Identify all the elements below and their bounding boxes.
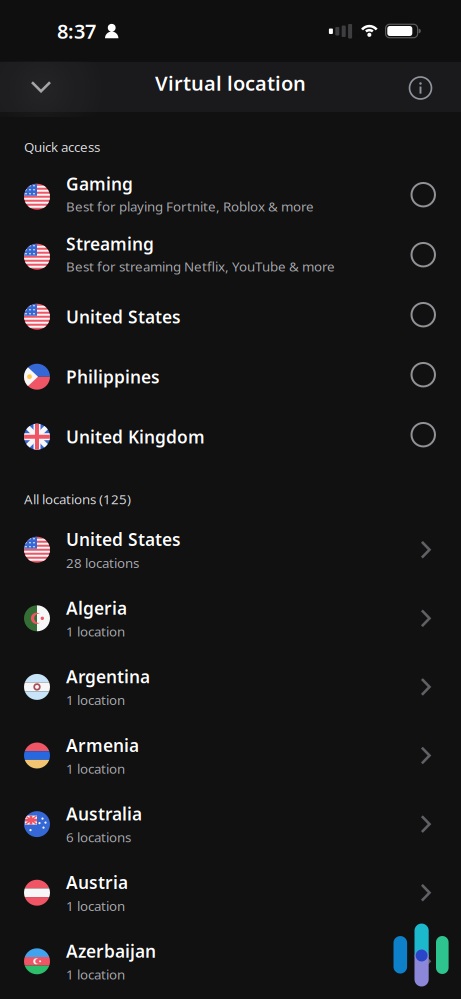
staticText: Armenia	[66, 734, 139, 757]
staticText: Best for playing Fortnite, Roblox & more	[66, 197, 314, 215]
button[interactable]: Australia	[0, 790, 461, 858]
staticText: 1 location	[66, 691, 125, 709]
staticText: United States	[66, 528, 181, 551]
button[interactable]: Info	[399, 67, 441, 109]
staticText: Argentina	[66, 665, 150, 688]
button[interactable]: Azerbaijan	[0, 927, 461, 996]
button[interactable]: Argentina	[0, 653, 461, 721]
button[interactable]: United Kingdom	[0, 407, 461, 467]
staticText: Australia	[66, 802, 142, 825]
button[interactable]: Austria	[0, 858, 461, 927]
button[interactable]: United States	[0, 515, 461, 584]
staticText: Austria	[66, 871, 128, 894]
button[interactable]: Armenia	[0, 721, 461, 790]
button[interactable]: United States	[0, 287, 461, 347]
staticText: 8:37	[57, 18, 96, 44]
button[interactable]: Algeria	[0, 584, 461, 653]
staticText: 1 location	[66, 897, 125, 915]
staticText: Philippines	[66, 365, 160, 388]
staticText: Algeria	[66, 596, 127, 619]
staticText: 6 locations	[66, 828, 131, 846]
button[interactable]: Dismiss	[16, 67, 65, 107]
staticText: Best for streaming Netflix, YouTube & mo…	[66, 257, 335, 275]
button[interactable]: Philippines	[0, 347, 461, 407]
staticText: 28 locations	[66, 554, 139, 572]
staticText: 1 location	[66, 760, 125, 777]
staticText: Gaming	[66, 172, 133, 195]
staticText: All locations (125)	[24, 490, 131, 508]
staticText: Virtual location	[155, 70, 306, 96]
staticText: Streaming	[66, 232, 154, 255]
button[interactable]: Gaming	[0, 167, 461, 227]
staticText: United Kingdom	[66, 425, 205, 448]
staticText: Azerbaijan	[66, 939, 156, 962]
staticText: 1 location	[66, 622, 125, 640]
staticText: United States	[66, 305, 181, 328]
staticText: 1 location	[66, 965, 125, 983]
button[interactable]: Streaming	[0, 227, 461, 287]
staticText: Quick access	[24, 138, 100, 156]
